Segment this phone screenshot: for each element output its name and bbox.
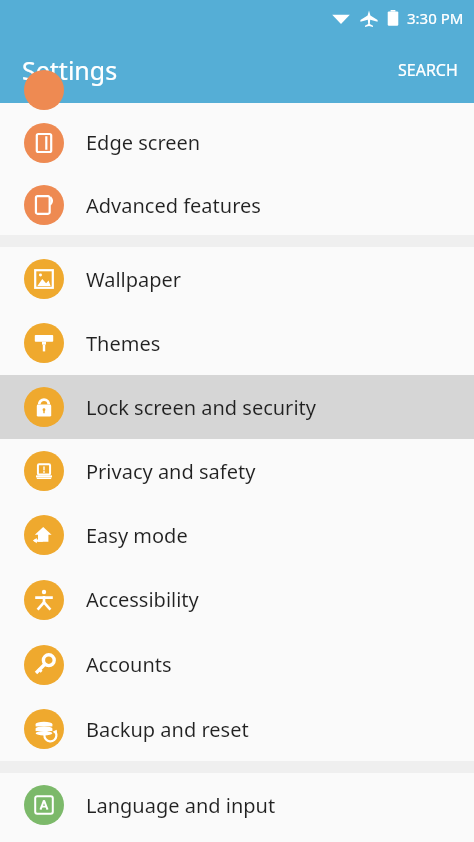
- button[interactable]: Accounts: [0, 632, 474, 697]
- button[interactable]: Language and input: [0, 773, 474, 837]
- staticText: Privacy and safety: [86, 458, 256, 485]
- button[interactable]: Edge screen: [0, 110, 474, 175]
- staticText: Advanced features: [86, 192, 261, 219]
- button[interactable]: Lock screen and security: [0, 375, 474, 439]
- staticText: Backup and reset: [86, 716, 249, 743]
- staticText: Lock screen and security: [86, 394, 316, 421]
- staticText: Wallpaper: [86, 266, 182, 293]
- button[interactable]: Themes: [0, 311, 474, 375]
- staticText: 3:30 PM: [407, 8, 464, 28]
- button[interactable]: Privacy and safety: [0, 439, 474, 503]
- button[interactable]: Accessibility: [0, 567, 474, 632]
- staticText: Accessibility: [86, 586, 199, 613]
- button[interactable]: Easy mode: [0, 503, 474, 567]
- button[interactable]: Backup and reset: [0, 697, 474, 761]
- staticText: Edge screen: [86, 129, 201, 156]
- button[interactable]: Advanced features: [0, 175, 474, 235]
- staticText: Easy mode: [86, 522, 188, 549]
- staticText: SEARCH: [398, 59, 458, 81]
- staticText: Accounts: [86, 651, 172, 678]
- staticText: Settings: [22, 53, 118, 87]
- button[interactable]: Previous setting: [0, 103, 474, 110]
- staticText: Themes: [86, 330, 161, 357]
- staticText: Language and input: [86, 792, 276, 819]
- button[interactable]: Wallpaper: [0, 247, 474, 311]
- button[interactable]: SEARCH: [382, 45, 474, 95]
